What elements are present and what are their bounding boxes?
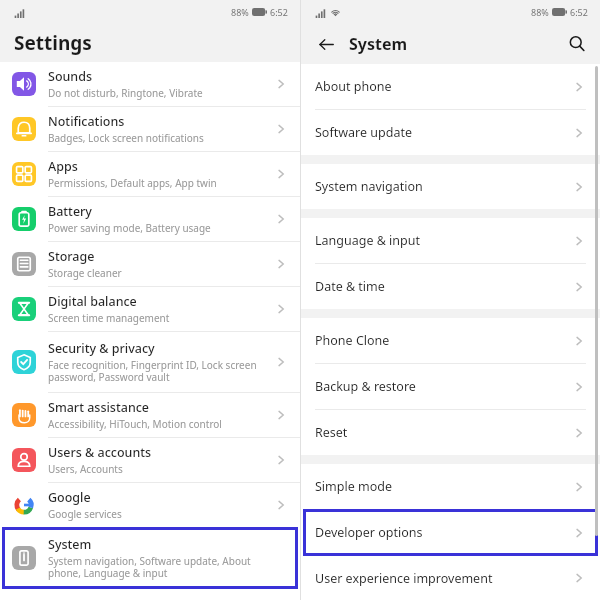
staticText: Language & input [315, 232, 572, 249]
staticText: Developer options [315, 524, 572, 541]
staticText: Storage cleaner [48, 266, 122, 280]
button[interactable]: System navigation [301, 164, 600, 209]
staticText: Screen time management [48, 311, 170, 325]
staticText: Do not disturb, Ringtone, Vibrate [48, 86, 203, 100]
staticText: Google [48, 489, 91, 506]
button[interactable]: Simple mode [301, 464, 600, 509]
staticText: Google services [48, 507, 122, 521]
staticText: Users & accounts [48, 444, 152, 461]
staticText: Storage [48, 248, 95, 265]
button[interactable]: Language & input [301, 218, 600, 263]
staticText: Face recognition, Fingerprint ID, Lock s… [48, 358, 257, 384]
staticText: 6:52 [570, 6, 588, 18]
staticText: Reset [315, 424, 572, 441]
staticText: Apps [48, 158, 78, 175]
staticText: Digital balance [48, 293, 137, 310]
staticText: Smart assistance [48, 399, 150, 416]
button[interactable]: Date & time [301, 264, 600, 309]
staticText: Date & time [315, 278, 572, 295]
button[interactable]: System [2, 527, 298, 589]
staticText: 6:52 [270, 6, 288, 18]
staticText: System [349, 33, 408, 55]
staticText: Phone Clone [315, 332, 572, 349]
button[interactable]: Smart assistance [0, 393, 300, 437]
button[interactable]: Developer options [303, 509, 598, 556]
staticText: Backup & restore [315, 378, 572, 395]
button[interactable]: Security & privacy [0, 332, 300, 392]
button[interactable]: Sounds [0, 62, 300, 106]
button[interactable]: About phone [301, 64, 600, 109]
staticText: 88% [231, 6, 249, 18]
staticText: Software update [315, 124, 572, 141]
staticText: System navigation, Software update, Abou… [48, 554, 251, 580]
staticText: Permissions, Default apps, App twin [48, 176, 217, 190]
button[interactable]: Search [560, 27, 594, 61]
staticText: Accessibility, HiTouch, Motion control [48, 417, 222, 431]
button[interactable]: Notifications [0, 107, 300, 151]
staticText: Sounds [48, 68, 93, 85]
button[interactable]: Back [311, 29, 341, 59]
staticText: Users, Accounts [48, 462, 123, 476]
staticText: 88% [531, 6, 549, 18]
staticText: System [48, 536, 92, 553]
button[interactable]: Battery [0, 197, 300, 241]
staticText: About phone [315, 78, 572, 95]
button[interactable]: Digital balance [0, 287, 300, 331]
staticText: Simple mode [315, 478, 572, 495]
button[interactable]: Google [0, 483, 300, 527]
staticText: Notifications [48, 113, 125, 130]
button[interactable]: Reset [301, 410, 600, 455]
button[interactable]: Software update [301, 110, 600, 155]
staticText: System navigation [315, 178, 572, 195]
button[interactable]: Apps [0, 152, 300, 196]
staticText: Badges, Lock screen notifications [48, 131, 204, 145]
staticText: Power saving mode, Battery usage [48, 221, 211, 235]
button[interactable]: Storage [0, 242, 300, 286]
staticText: User experience improvement [315, 570, 572, 587]
button[interactable]: User experience improvement [301, 556, 600, 600]
staticText: Security & privacy [48, 340, 155, 357]
button[interactable]: Phone Clone [301, 318, 600, 363]
staticText: Battery [48, 203, 92, 220]
button[interactable]: Backup & restore [301, 364, 600, 409]
staticText: Settings [14, 30, 92, 56]
button[interactable]: Users & accounts [0, 438, 300, 482]
